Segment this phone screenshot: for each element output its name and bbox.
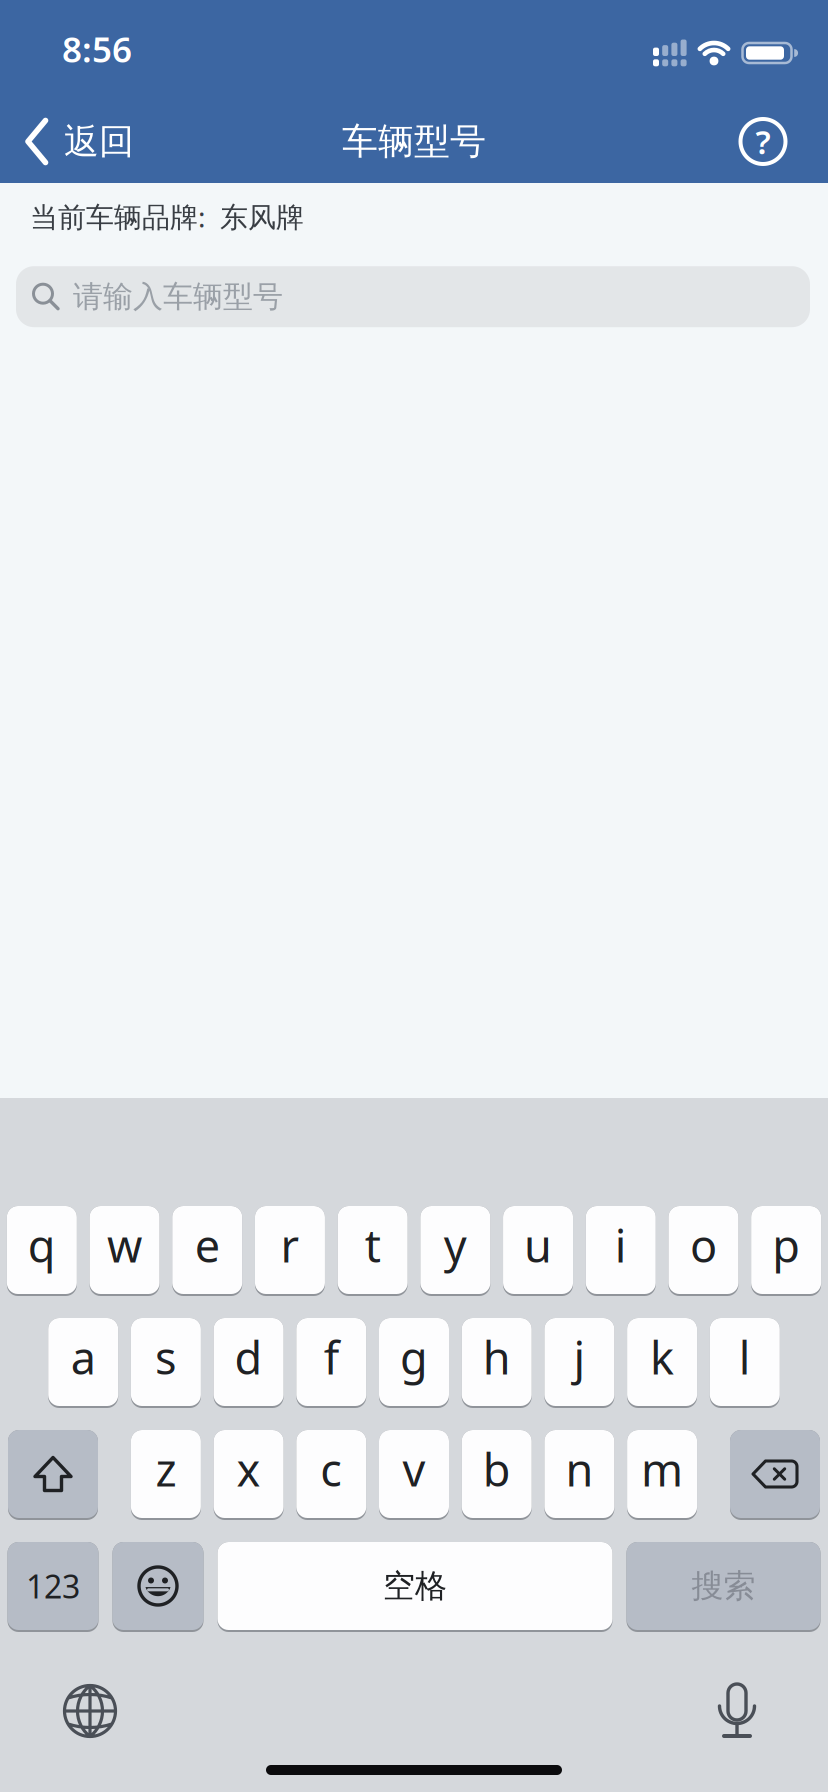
staticText: o — [690, 1215, 717, 1275]
button[interactable]: u — [503, 1206, 573, 1296]
button[interactable]: s — [131, 1318, 201, 1408]
button[interactable]: Shift — [8, 1430, 98, 1520]
button[interactable]: i — [586, 1206, 656, 1296]
staticText: z — [155, 1439, 176, 1499]
button[interactable]: 听写 — [716, 1682, 760, 1740]
staticText: 返回 — [64, 120, 134, 163]
staticText: u — [524, 1215, 552, 1275]
staticText: 车辆型号 — [342, 119, 486, 164]
button[interactable]: 返回 — [0, 109, 134, 165]
staticText: w — [107, 1215, 142, 1275]
button[interactable]: v — [379, 1430, 449, 1520]
staticText: d — [235, 1327, 263, 1387]
button[interactable]: 请输入车辆型号 — [0, 266, 828, 327]
staticText: p — [772, 1215, 800, 1275]
staticText: 8:56 — [62, 26, 132, 72]
staticText: q — [28, 1215, 56, 1275]
button[interactable]: q — [7, 1206, 77, 1296]
staticText: h — [483, 1327, 511, 1387]
staticText: r — [280, 1215, 299, 1275]
button[interactable]: k — [627, 1318, 697, 1408]
staticText: b — [483, 1439, 511, 1499]
staticText: n — [565, 1439, 593, 1499]
staticText: l — [739, 1327, 751, 1387]
button[interactable]: e — [172, 1206, 242, 1296]
button[interactable]: b — [462, 1430, 532, 1520]
button[interactable]: 下一个键盘 — [62, 1683, 118, 1739]
staticText: 空格 — [383, 1566, 447, 1606]
button[interactable]: h — [462, 1318, 532, 1408]
staticText: e — [195, 1215, 220, 1275]
button[interactable]: g — [379, 1318, 449, 1408]
staticText: g — [400, 1327, 428, 1387]
button[interactable]: w — [90, 1206, 160, 1296]
staticText: m — [641, 1439, 683, 1499]
staticText: 请输入车辆型号 — [73, 278, 283, 315]
staticText: f — [324, 1327, 339, 1387]
button[interactable]: Delete — [730, 1430, 820, 1520]
staticText: 123 — [26, 1565, 80, 1607]
staticText: j — [573, 1327, 585, 1387]
button[interactable]: x — [214, 1430, 284, 1520]
button[interactable]: d — [214, 1318, 284, 1408]
button[interactable]: 123 — [7, 1542, 98, 1632]
button[interactable]: p — [751, 1206, 821, 1296]
staticText: 当前车辆品牌: 东风牌 — [30, 198, 304, 235]
button[interactable]: l — [710, 1318, 780, 1408]
button[interactable]: 搜索 — [626, 1542, 820, 1632]
button[interactable]: z — [131, 1430, 201, 1520]
button[interactable]: o — [668, 1206, 738, 1296]
staticText: s — [155, 1327, 177, 1387]
button[interactable]: r — [255, 1206, 325, 1296]
button[interactable]: 表情 — [112, 1542, 203, 1632]
staticText: 搜索 — [691, 1566, 755, 1606]
staticText: x — [237, 1439, 261, 1499]
button[interactable]: a — [48, 1318, 118, 1408]
button[interactable]: c — [296, 1430, 366, 1520]
button[interactable]: m — [627, 1430, 697, 1520]
staticText: t — [365, 1215, 381, 1275]
staticText: v — [402, 1439, 425, 1499]
staticText: ? — [755, 120, 770, 163]
staticText: k — [650, 1327, 674, 1387]
button[interactable]: y — [420, 1206, 490, 1296]
staticText: c — [320, 1439, 342, 1499]
button[interactable]: 帮助 — [738, 108, 828, 166]
button[interactable]: t — [338, 1206, 408, 1296]
staticText: a — [71, 1327, 96, 1387]
button[interactable]: j — [544, 1318, 614, 1408]
button[interactable]: f — [296, 1318, 366, 1408]
button[interactable]: 空格 — [217, 1542, 612, 1632]
staticText: y — [444, 1215, 467, 1275]
staticText: i — [615, 1215, 627, 1275]
button[interactable]: n — [544, 1430, 614, 1520]
